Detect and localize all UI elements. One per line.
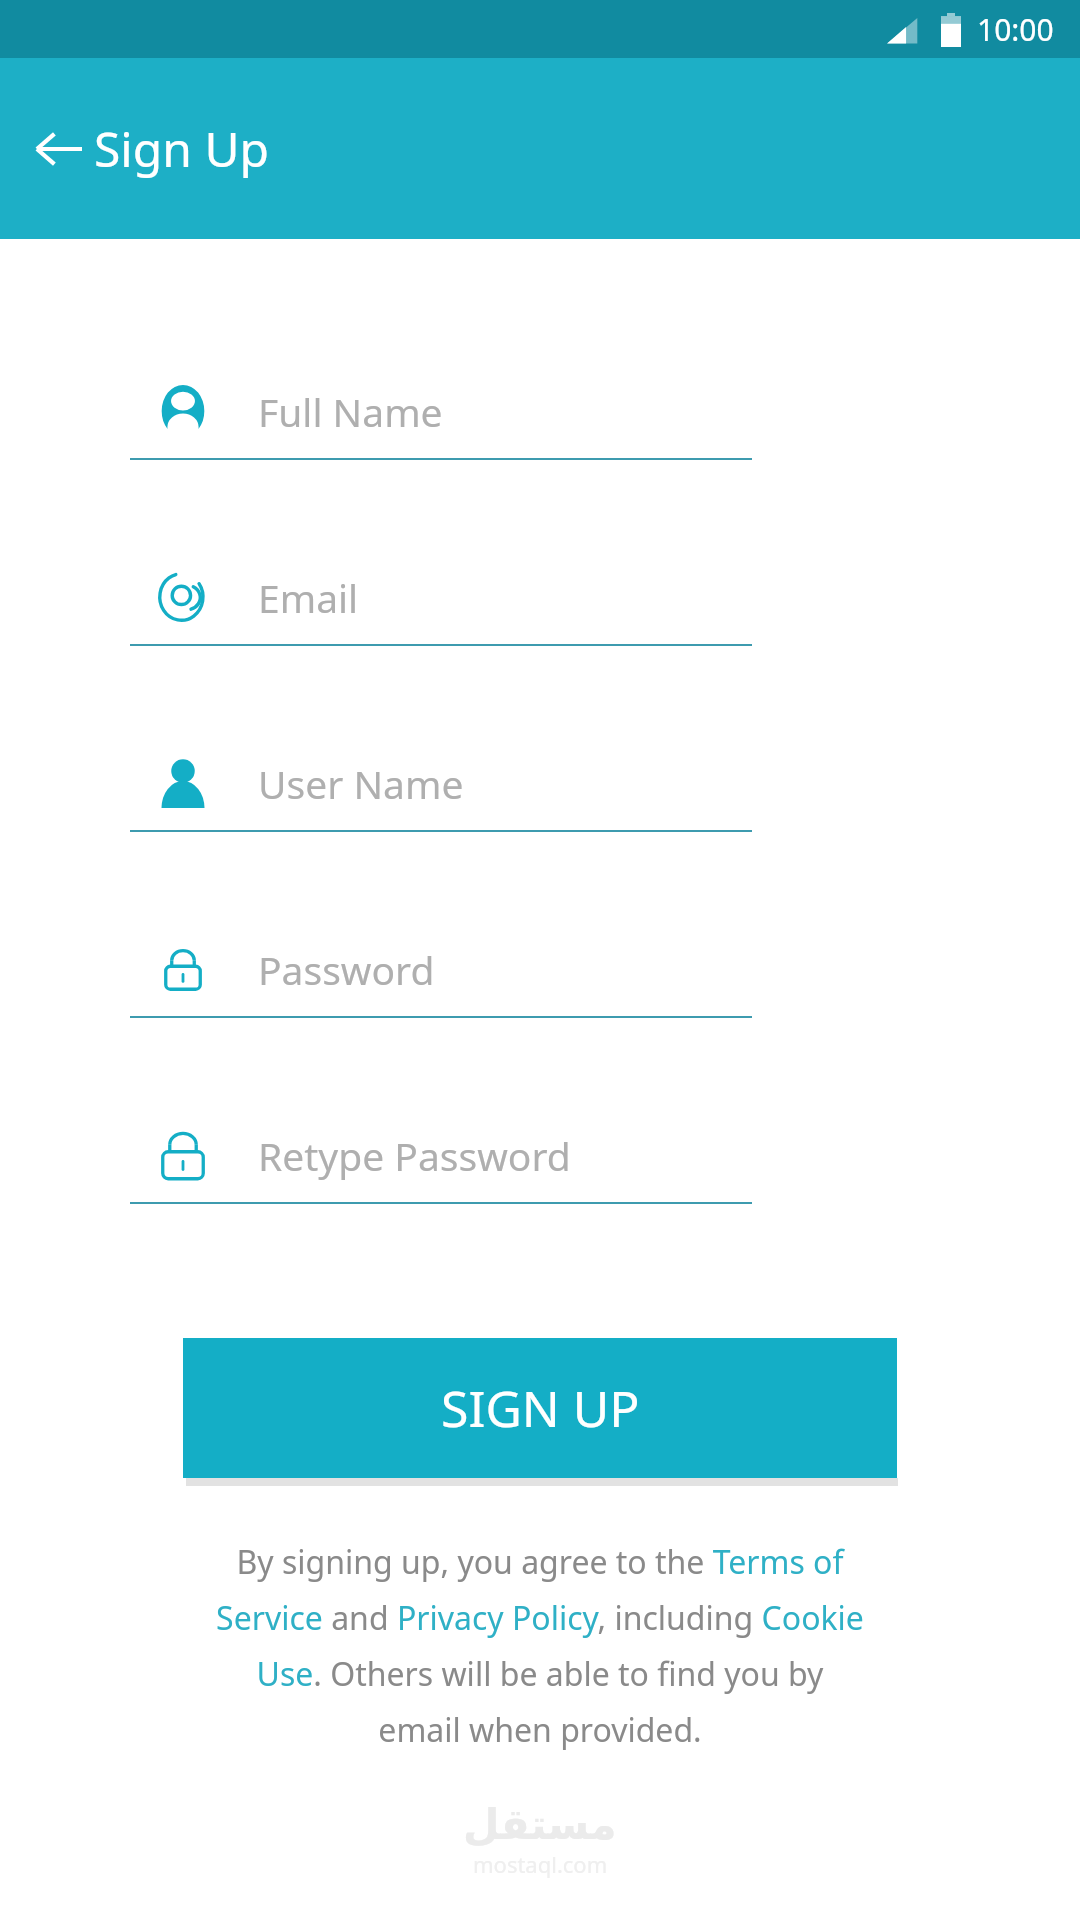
button[interactable]: SIGN UP [183, 1338, 897, 1478]
button[interactable]: Email [130, 556, 752, 646]
staticText: مستقل [463, 1800, 617, 1849]
button[interactable]: Password [130, 928, 752, 1018]
staticText: Retype Password [258, 1129, 571, 1182]
staticText: mostaql.com [473, 1849, 608, 1879]
button[interactable]: User Name [130, 742, 752, 832]
staticText: Full Name [258, 385, 443, 438]
staticText: By signing up, you agree to the Terms of… [215, 1540, 865, 1751]
staticText: Password [258, 943, 435, 996]
staticText: 10:00 [977, 9, 1054, 50]
button[interactable]: By signing up, you agree to the Terms of… [215, 1540, 865, 1751]
staticText: Email [258, 571, 359, 624]
staticText: User Name [258, 757, 464, 810]
staticText: Sign Up [94, 116, 270, 181]
button[interactable]: Back [22, 112, 96, 186]
button[interactable]: Retype Password [130, 1114, 752, 1204]
staticText: SIGN UP [441, 1374, 640, 1442]
button[interactable]: Full Name [130, 370, 752, 460]
